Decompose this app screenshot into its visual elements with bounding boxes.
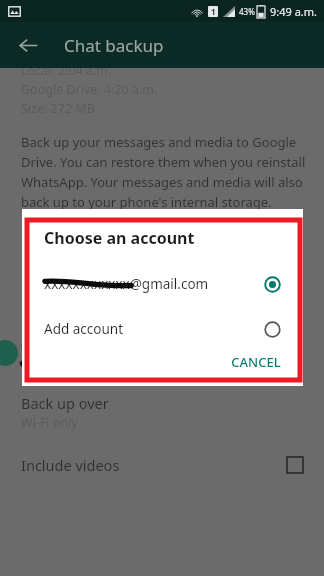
button[interactable]: Back — [8, 25, 48, 65]
staticText: xxxxxxxxxxxx@gmail.com — [21, 353, 180, 371]
staticText: 1 — [211, 6, 216, 17]
staticText: Daily — [21, 295, 50, 312]
staticText: Size: 272 MB — [21, 100, 95, 117]
staticText: 43% — [239, 6, 255, 17]
staticText: CANCEL — [231, 353, 281, 370]
button[interactable]: Include videos — [21, 455, 308, 475]
button[interactable]: Account — [21, 331, 308, 371]
button[interactable]: xxxxxxxxxxxx@gmail.com — [22, 265, 303, 303]
staticText: Account — [21, 331, 77, 351]
button[interactable]: CANCEL — [223, 347, 289, 376]
staticText: Back up over — [21, 393, 109, 413]
staticText: Google Drive: 4:20 a.m. — [21, 81, 158, 98]
staticText: Choose an account — [44, 227, 195, 249]
staticText: Local: 2:04 a.m. — [21, 62, 112, 79]
staticText: Add account — [44, 320, 124, 338]
staticText: xxxxxxxxxxxx@gmail.com — [44, 275, 209, 293]
staticText: Back up your messages and media to Googl… — [21, 133, 308, 231]
staticText: 9:49 a.m. — [270, 4, 318, 19]
button[interactable]: Back up over — [21, 393, 308, 431]
staticText: Chat backup — [64, 34, 164, 57]
staticText: Wi-Fi only — [21, 414, 78, 431]
staticText: Include videos — [21, 455, 120, 475]
button[interactable]: Add account — [22, 311, 303, 347]
